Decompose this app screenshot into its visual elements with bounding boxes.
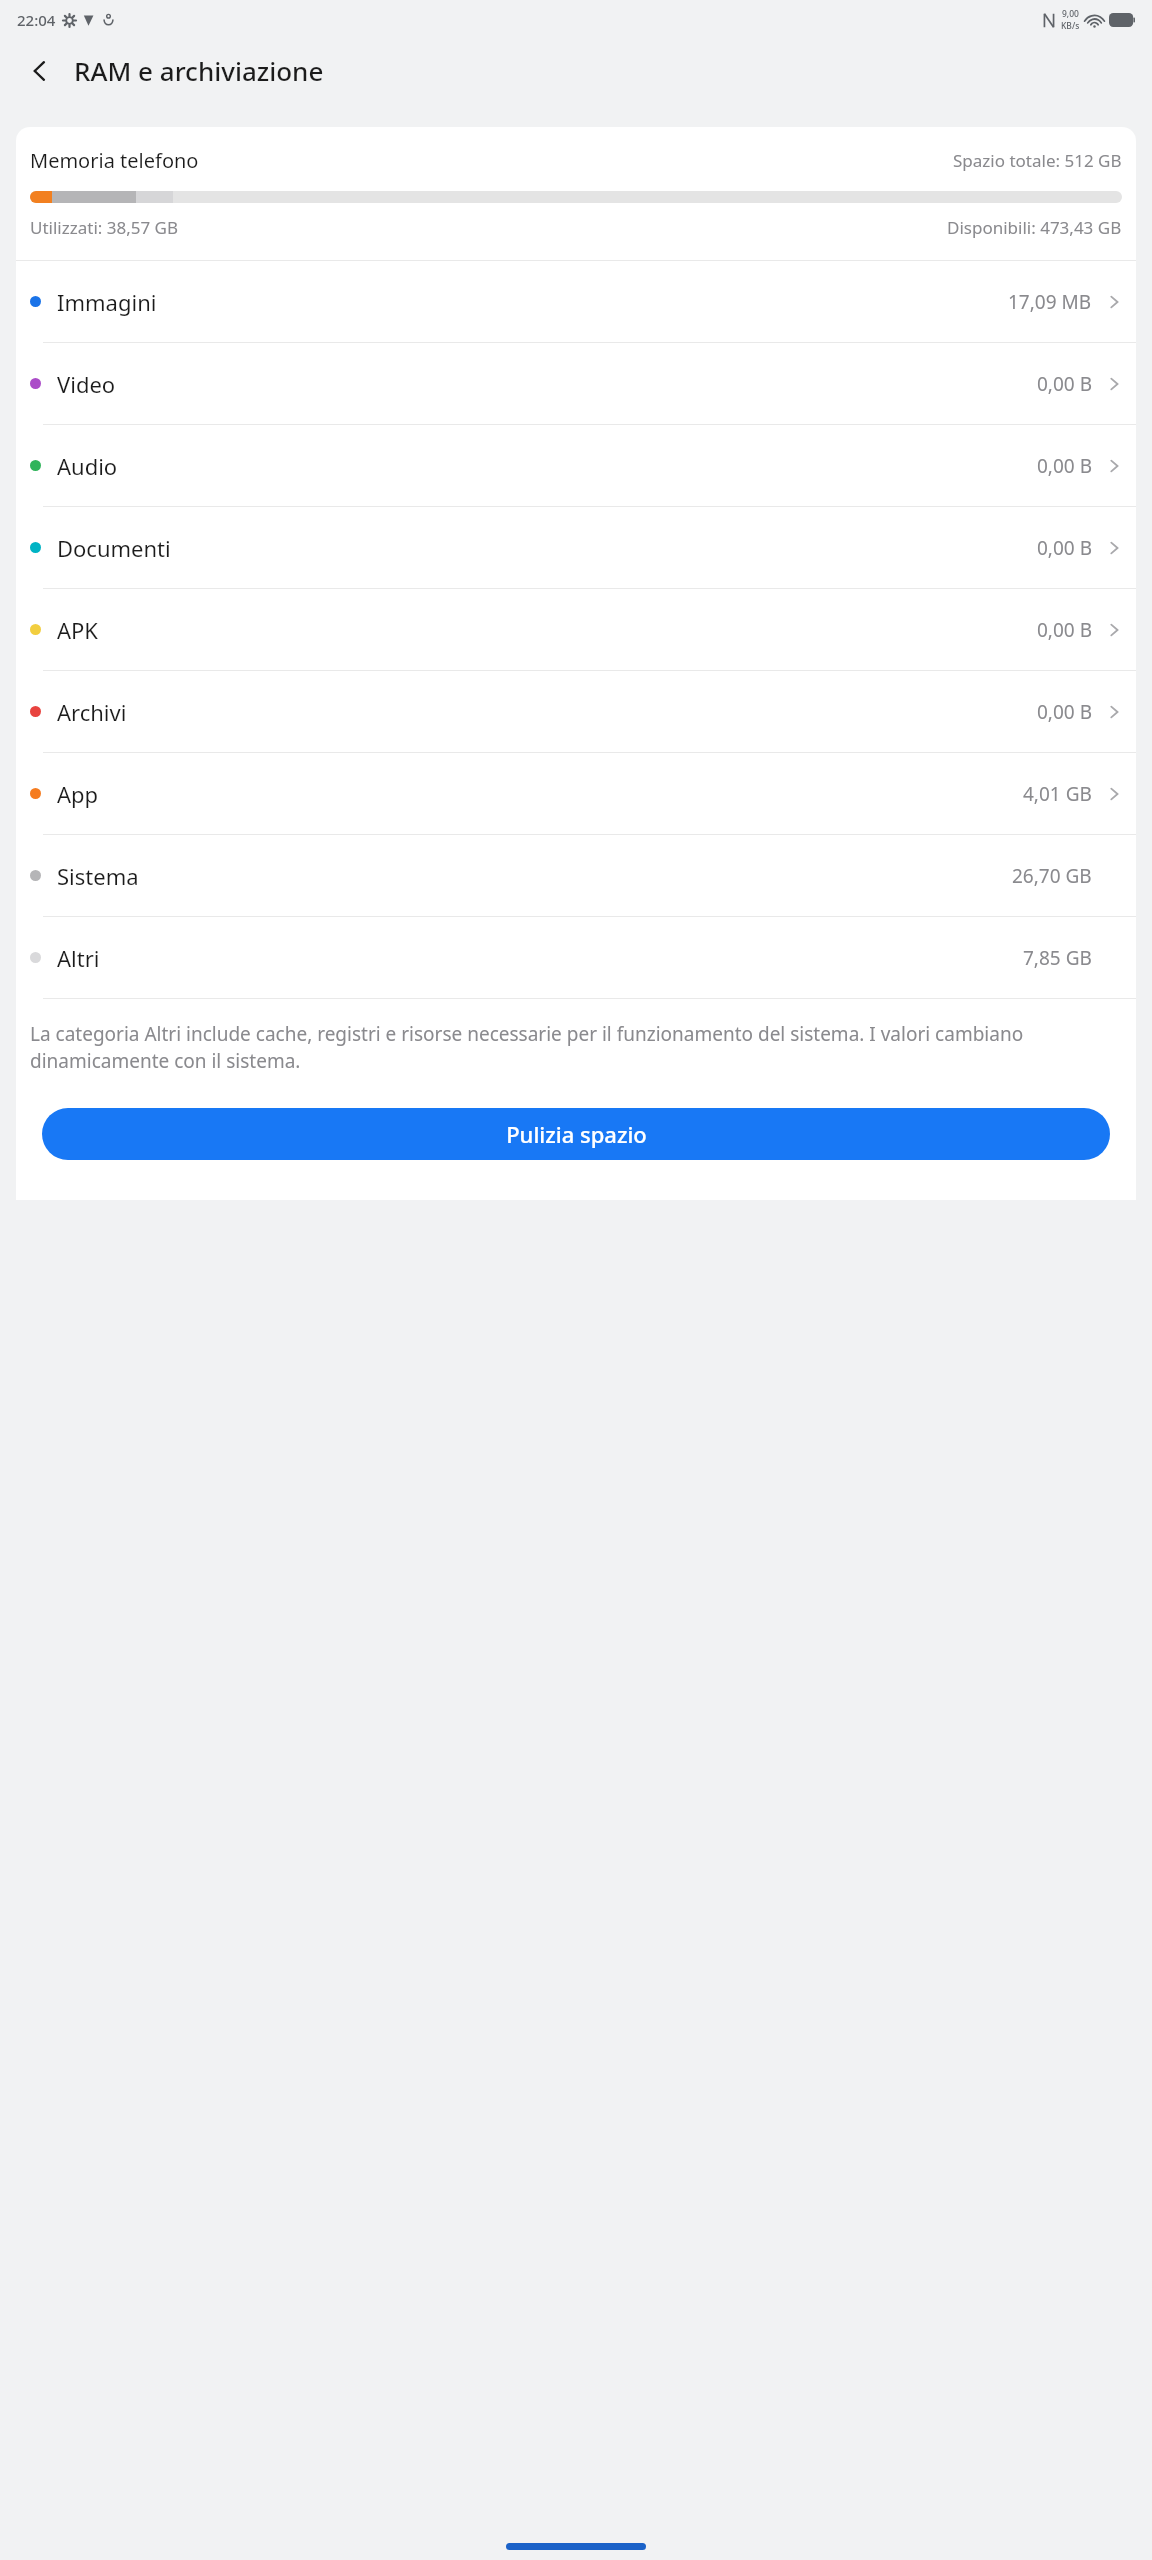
staticText: 22:04 (17, 10, 56, 30)
staticText: Immagini (57, 287, 157, 317)
staticText: KB/s (1061, 20, 1080, 32)
staticText: Memoria telefono (30, 147, 199, 174)
staticText: 17,09 MB (1008, 289, 1092, 315)
button[interactable]: APK (16, 589, 1136, 670)
staticText: 0,00 B (1037, 535, 1092, 561)
staticText: Disponibili: 473,43 GB (947, 216, 1122, 239)
staticText: App (57, 779, 99, 809)
staticText: 0,00 B (1037, 699, 1092, 725)
staticText: 7,85 GB (1023, 945, 1092, 971)
button[interactable]: Altri (16, 917, 1136, 998)
staticText: 0,00 B (1037, 617, 1092, 643)
button[interactable]: Pulizia spazio (42, 1108, 1110, 1160)
button[interactable]: Video (16, 343, 1136, 424)
staticText: APK (57, 615, 98, 645)
staticText: 4,01 GB (1023, 781, 1092, 807)
staticText: 0,00 B (1037, 453, 1092, 479)
staticText: Sistema (57, 861, 139, 891)
staticText: Altri (57, 943, 100, 973)
staticText: Audio (57, 451, 118, 481)
staticText: Utilizzati: 38,57 GB (30, 216, 179, 239)
staticText: Pulizia spazio (506, 1119, 647, 1149)
staticText: 9,00 (1062, 8, 1079, 20)
staticText: Documenti (57, 533, 171, 563)
button[interactable]: Immagini (16, 261, 1136, 342)
staticText: La categoria Altri include cache, regist… (30, 1021, 1118, 1074)
button[interactable]: Audio (16, 425, 1136, 506)
staticText: RAM e archiviazione (74, 53, 324, 88)
button[interactable]: Sistema (16, 835, 1136, 916)
button[interactable]: Indietro (18, 49, 62, 93)
staticText: 26,70 GB (1012, 863, 1092, 889)
staticText: Archivi (57, 697, 127, 727)
staticText: 0,00 B (1037, 371, 1092, 397)
staticText: Spazio totale: 512 GB (953, 149, 1122, 172)
staticText: Video (57, 369, 116, 399)
button[interactable]: Archivi (16, 671, 1136, 752)
button[interactable]: App (16, 753, 1136, 834)
button[interactable]: Documenti (16, 507, 1136, 588)
